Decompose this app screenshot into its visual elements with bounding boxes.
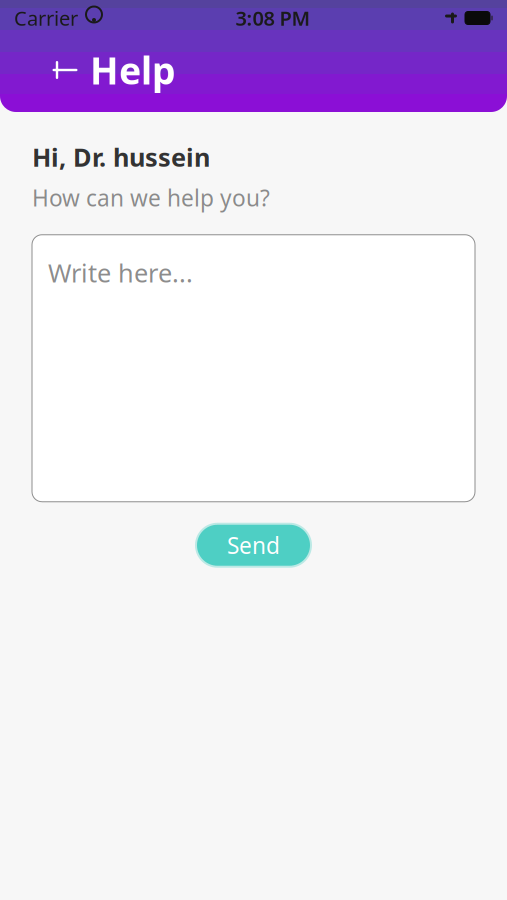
button[interactable]: Send [197,525,310,566]
staticText: How can we help you? [32,183,270,213]
staticText: Help [90,45,176,95]
staticText: Hi, Dr. hussein [32,140,210,174]
staticText: 3:08 PM [235,5,310,31]
staticText: Write here... [48,256,193,289]
staticText: Carrier [14,5,78,31]
staticText: Send [227,530,280,560]
button[interactable]: Back [42,48,88,92]
